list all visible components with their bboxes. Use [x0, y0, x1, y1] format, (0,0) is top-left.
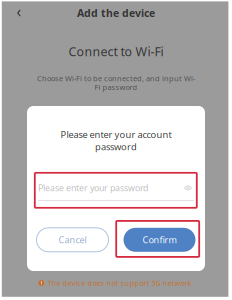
- button[interactable]: Back: [8, 3, 30, 23]
- staticText: Connect to Wi-Fi: [68, 43, 163, 60]
- staticText: The device does not support 5G network: [48, 278, 192, 288]
- staticText: Confirm: [142, 234, 176, 246]
- staticText: Choose Wi-Fi to be connected, and input …: [37, 73, 195, 83]
- staticText: Add the device: [77, 6, 155, 20]
- staticText: Cancel: [58, 234, 86, 246]
- button[interactable]: Confirm: [123, 228, 195, 252]
- button[interactable]: Cancel: [36, 228, 108, 252]
- staticText: password: [95, 140, 137, 153]
- staticText: Please enter your password: [38, 182, 148, 194]
- staticText: Please enter your account: [60, 128, 171, 141]
- staticText: Fi password: [94, 82, 137, 92]
- button[interactable]: Show password: [182, 182, 194, 193]
